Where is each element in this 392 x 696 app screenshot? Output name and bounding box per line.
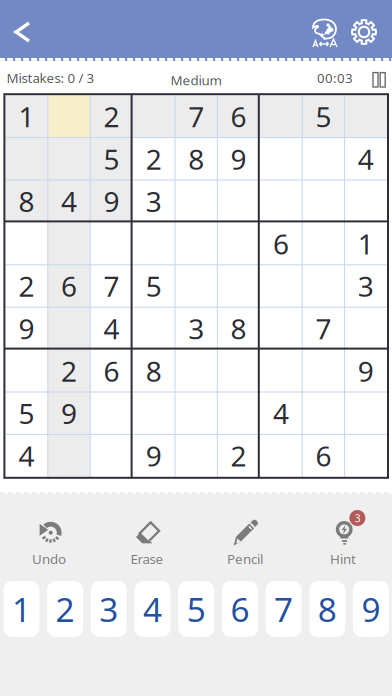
staticText: 8	[188, 140, 204, 177]
staticText: 1	[358, 225, 374, 262]
staticText: 9	[358, 352, 374, 389]
staticText: 6	[103, 352, 119, 389]
button[interactable]: 1	[3, 581, 39, 637]
staticText: 2	[19, 267, 35, 305]
button[interactable]: 8	[309, 581, 345, 637]
staticText: 2	[231, 437, 247, 474]
staticText: 9	[231, 140, 247, 177]
button[interactable]: Theme	[304, 9, 344, 53]
staticText: 4	[61, 183, 77, 220]
staticText: 9	[61, 395, 77, 432]
staticText: 7	[274, 587, 293, 631]
staticText: 2	[103, 98, 119, 135]
staticText: 6	[273, 225, 289, 262]
staticText: 6	[315, 437, 331, 474]
button[interactable]: 6	[222, 581, 258, 637]
button[interactable]: Undo	[0, 513, 98, 569]
staticText: 9	[19, 310, 35, 347]
staticText: 3	[188, 310, 204, 347]
button[interactable]: Settings	[344, 10, 384, 54]
staticText: 7	[188, 98, 204, 135]
staticText: 9	[146, 437, 162, 474]
staticText: 4	[358, 140, 374, 177]
staticText: 1	[12, 587, 31, 631]
button[interactable]: Pause	[368, 69, 390, 91]
staticText: Mistakes: 0 / 3	[6, 69, 94, 87]
staticText: 5	[315, 98, 331, 135]
button[interactable]: 4	[134, 581, 170, 637]
button[interactable]: Erase	[98, 513, 196, 569]
staticText: Hint	[330, 550, 356, 568]
staticText: 3	[354, 511, 360, 525]
staticText: Undo	[32, 550, 66, 568]
staticText: 3	[99, 587, 118, 631]
staticText: 6	[231, 98, 247, 135]
staticText: 8	[231, 310, 247, 347]
staticText: 6	[230, 587, 249, 631]
staticText: 2	[61, 352, 77, 389]
staticText: 2	[146, 140, 162, 177]
staticText: 6	[61, 267, 77, 305]
staticText: 1	[19, 98, 35, 135]
staticText: 4	[19, 437, 35, 474]
button[interactable]: 3	[91, 581, 127, 637]
staticText: 3	[146, 183, 162, 220]
staticText: Pencil	[227, 550, 263, 568]
button[interactable]: 9	[353, 581, 389, 637]
staticText: Medium	[170, 71, 221, 89]
staticText: 5	[187, 587, 206, 631]
staticText: 7	[315, 310, 331, 347]
button[interactable]: 2	[47, 581, 83, 637]
staticText: 5	[103, 140, 119, 177]
staticText: 9	[103, 183, 119, 220]
staticText: 5	[146, 267, 162, 305]
button[interactable]: 7	[266, 581, 302, 637]
staticText: 00:03	[317, 69, 353, 87]
staticText: 3	[358, 267, 374, 305]
staticText: 8	[146, 352, 162, 389]
staticText: 9	[361, 587, 380, 631]
staticText: 5	[19, 395, 35, 432]
button[interactable]: Back	[4, 10, 40, 54]
button[interactable]: 3	[294, 513, 392, 569]
staticText: 4	[143, 587, 162, 631]
staticText: 4	[273, 395, 289, 432]
staticText: 2	[56, 587, 75, 631]
staticText: 8	[318, 587, 337, 631]
staticText: 7	[103, 267, 119, 305]
button[interactable]: Pencil	[196, 513, 294, 569]
button[interactable]: 5	[178, 581, 214, 637]
staticText: 8	[19, 183, 35, 220]
staticText: 4	[103, 310, 119, 347]
staticText: Erase	[130, 550, 163, 568]
